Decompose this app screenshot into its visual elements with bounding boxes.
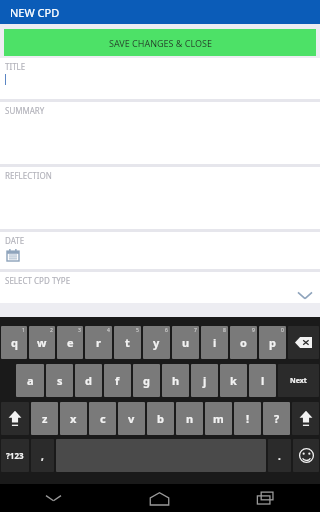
staticText: SAVE CHANGES & CLOSE (109, 37, 212, 49)
staticText: x (70, 411, 77, 426)
button[interactable]: REFLECTION (0, 167, 320, 229)
staticText: SUMMARY (5, 105, 45, 116)
staticText: 8 (223, 327, 226, 334)
staticText: d (85, 373, 92, 388)
button[interactable]: TITLE (0, 58, 320, 99)
button[interactable]: Emoji (293, 439, 319, 472)
staticText: 0 (281, 327, 284, 334)
other: Pick date (7, 249, 19, 261)
staticText: y (153, 335, 160, 350)
staticText: t (125, 335, 130, 350)
staticText: 2 (50, 327, 53, 334)
button[interactable]: w (29, 326, 55, 359)
staticText: k (230, 373, 237, 388)
button[interactable]: Shift (292, 402, 319, 435)
staticText: TITLE (5, 61, 26, 72)
button[interactable]: l (249, 364, 276, 397)
staticText: r (96, 335, 101, 350)
button[interactable]: v (118, 402, 145, 435)
staticText: s (57, 373, 63, 388)
button[interactable]: z (31, 402, 58, 435)
button[interactable]: Backspace (288, 326, 319, 359)
button[interactable]: r (85, 326, 112, 359)
staticText: 4 (107, 327, 110, 334)
staticText: a (27, 373, 34, 388)
button[interactable]: a (16, 364, 44, 397)
button[interactable]: u (172, 326, 199, 359)
staticText: p (269, 335, 276, 350)
button[interactable]: c (89, 402, 116, 435)
button[interactable]: n (176, 402, 203, 435)
staticText: o (240, 335, 247, 350)
staticText: b (157, 411, 164, 426)
button[interactable]: SELECT CPD TYPE (0, 272, 320, 303)
button[interactable]: y (143, 326, 170, 359)
staticText: 6 (165, 327, 168, 334)
staticText: 7 (194, 327, 197, 334)
button[interactable]: Back (0, 484, 106, 512)
button[interactable]: Recent apps (213, 484, 320, 512)
staticText: . (278, 449, 281, 463)
staticText: ?123 (6, 450, 24, 461)
staticText: SELECT CPD TYPE (5, 275, 71, 286)
button[interactable]: i (201, 326, 228, 359)
button[interactable]: DATE (0, 232, 320, 269)
button[interactable]: , (31, 439, 54, 472)
button[interactable]: e (57, 326, 83, 359)
staticText: 1 (22, 327, 25, 334)
button[interactable]: b (147, 402, 174, 435)
button[interactable]: s (46, 364, 73, 397)
staticText: j (203, 373, 207, 388)
staticText: ? (274, 411, 280, 426)
staticText: ! (246, 411, 250, 426)
button[interactable]: k (220, 364, 247, 397)
other: Expand CPD type (298, 291, 312, 300)
button[interactable]: ?123 (1, 439, 29, 472)
button[interactable]: ! (234, 402, 261, 435)
staticText: w (37, 335, 47, 350)
staticText: q (11, 335, 18, 350)
button[interactable]: Home (106, 484, 213, 512)
button[interactable]: q (1, 326, 27, 359)
button[interactable]: Shift (1, 402, 29, 435)
staticText: e (67, 335, 74, 350)
staticText: h (172, 373, 180, 388)
staticText: NEW CPD (10, 5, 60, 20)
staticText: 3 (78, 327, 81, 334)
staticText: g (143, 373, 150, 388)
staticText: c (100, 411, 106, 426)
button[interactable]: . (268, 439, 291, 472)
button[interactable]: Next (278, 364, 319, 397)
staticText: REFLECTION (5, 170, 52, 181)
staticText: n (186, 411, 194, 426)
button[interactable]: t (114, 326, 141, 359)
staticText: DATE (5, 235, 25, 246)
button[interactable]: p (259, 326, 286, 359)
staticText: m (213, 411, 224, 426)
button[interactable]: ? (263, 402, 290, 435)
button[interactable]: x (60, 402, 87, 435)
button[interactable]: g (133, 364, 160, 397)
staticText: l (261, 373, 265, 388)
button[interactable]: SUMMARY (0, 102, 320, 164)
button[interactable]: SAVE CHANGES & CLOSE (4, 29, 316, 56)
button[interactable]: o (230, 326, 257, 359)
button[interactable]: h (162, 364, 189, 397)
staticText: 9 (252, 327, 255, 334)
button[interactable]: j (191, 364, 218, 397)
staticText: , (41, 449, 44, 463)
staticText: 5 (136, 327, 139, 334)
staticText: v (128, 411, 135, 426)
staticText: i (213, 335, 217, 350)
button[interactable]: m (205, 402, 232, 435)
staticText: f (115, 373, 120, 388)
staticText: Next (290, 376, 307, 386)
button[interactable]: d (75, 364, 102, 397)
button[interactable]: f (104, 364, 131, 397)
staticText: u (182, 335, 190, 350)
staticText: z (42, 411, 48, 426)
